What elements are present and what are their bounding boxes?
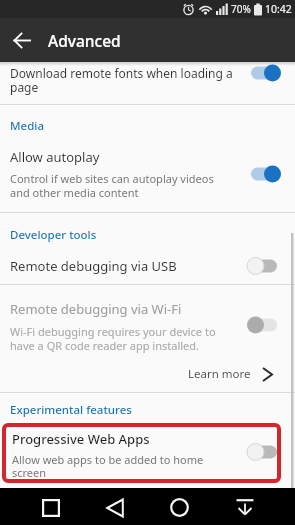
button[interactable]: Allow autoplay (0, 140, 295, 204)
staticText: Remote debugging via USB (10, 257, 177, 275)
staticText: Progressive Web Apps (12, 430, 150, 448)
button[interactable] (87, 489, 142, 525)
staticText: Remote debugging via Wi-Fi (10, 300, 182, 318)
button[interactable] (0, 18, 44, 62)
staticText: Allow autoplay (10, 148, 100, 166)
staticText: Advanced (48, 30, 121, 51)
staticText: 10:42 (265, 2, 292, 16)
staticText: Experimental features (10, 402, 132, 418)
staticText: Developer tools (10, 227, 97, 243)
button[interactable] (152, 489, 207, 525)
staticText: Media (10, 118, 44, 134)
button[interactable]: Progressive Web Apps (0, 424, 295, 482)
staticText: Learn more (188, 366, 251, 382)
button[interactable]: Remote debugging via USB (0, 248, 295, 284)
staticText: Allow web apps to be added to home scree… (12, 452, 204, 480)
staticText: Control if web sites can autoplay videos… (10, 171, 214, 200)
staticText: Wi-Fi debugging requires your device to … (10, 324, 216, 353)
button[interactable]: Download remote fonts when loading a pag… (0, 56, 295, 104)
button[interactable] (217, 489, 272, 525)
button[interactable] (23, 489, 78, 525)
button[interactable]: Learn more (0, 358, 295, 390)
staticText: 70% (231, 2, 251, 16)
staticText: Download remote fonts when loading a pag… (10, 65, 233, 96)
